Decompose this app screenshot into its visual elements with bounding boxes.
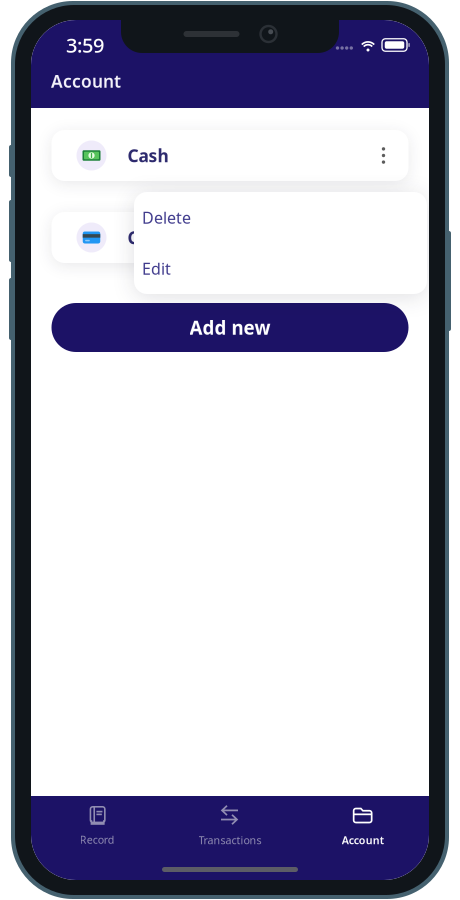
staticText: Card	[127, 226, 166, 249]
button[interactable]: Account	[296, 800, 429, 852]
staticText: Add new	[189, 315, 270, 340]
button[interactable]: Record	[31, 800, 164, 852]
staticText: Record	[80, 832, 115, 847]
button[interactable]: More options for Cash	[370, 137, 396, 173]
staticText: Cash	[127, 144, 168, 167]
staticText: Account	[51, 69, 121, 92]
button[interactable]: Delete	[134, 192, 427, 243]
button[interactable]: Transactions	[164, 800, 296, 852]
button[interactable]: Add new	[51, 303, 408, 352]
button[interactable]: Edit	[134, 243, 427, 294]
staticText: Delete	[142, 207, 191, 228]
staticText: Account	[342, 833, 384, 847]
staticText: 3:59	[66, 32, 104, 58]
staticText: Edit	[142, 258, 171, 279]
staticText: Transactions	[198, 833, 261, 847]
